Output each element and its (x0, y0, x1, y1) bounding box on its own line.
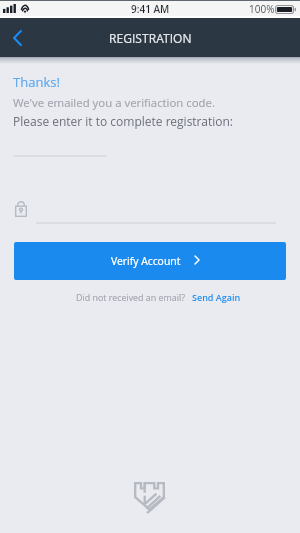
staticText: 100% (249, 2, 275, 16)
button[interactable]: Verify Account (14, 242, 286, 280)
staticText: Verify Account (111, 254, 181, 268)
staticText: Did not received an email? (76, 291, 186, 303)
staticText: Send Again (192, 291, 241, 303)
button[interactable]: Back (0, 18, 34, 56)
staticText: REGISTRATION (109, 30, 192, 46)
staticText: Thanks! (13, 73, 60, 91)
button[interactable]: Send Again (192, 291, 241, 303)
staticText: 9:41 AM (131, 2, 170, 16)
staticText: We've emailed you a verifiaction code. (13, 95, 216, 111)
staticText: Please enter it to complete registration… (13, 113, 234, 129)
